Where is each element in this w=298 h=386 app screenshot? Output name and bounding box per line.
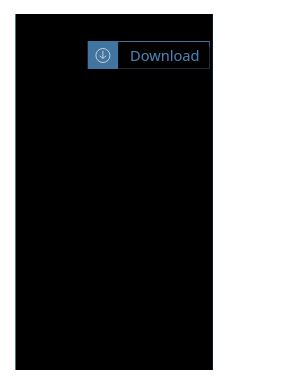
staticText: Download <box>130 45 200 65</box>
button[interactable]: Download <box>88 41 210 69</box>
